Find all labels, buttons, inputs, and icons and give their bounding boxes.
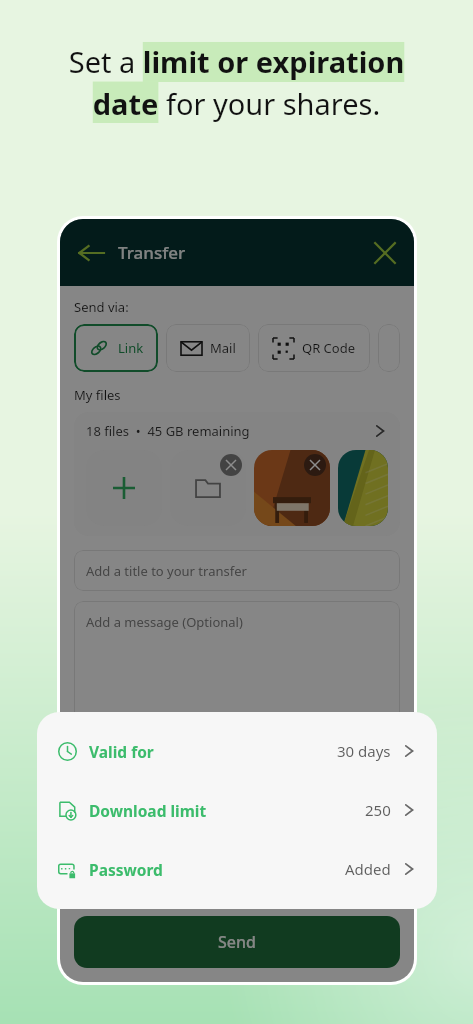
button[interactable]: Valid for [57, 736, 417, 766]
other: Open files [372, 423, 388, 439]
button[interactable] [170, 450, 246, 526]
staticText: Send [218, 931, 256, 953]
staticText: Add a message (Optional) [86, 613, 243, 631]
staticText: 30 days [337, 741, 391, 761]
staticText: QR Code [302, 339, 356, 357]
staticText: Send via: [74, 298, 129, 316]
staticText: Password [89, 859, 163, 880]
staticText: Set a limit or expiration date for your … [24, 42, 449, 123]
button[interactable]: Link [74, 324, 158, 372]
staticText: Transfer [118, 241, 186, 264]
staticText: Added [345, 859, 391, 879]
button[interactable]: Close [372, 240, 398, 266]
button[interactable]: Add a message (Optional) [74, 601, 400, 721]
staticText: Link [118, 339, 144, 357]
button[interactable]: 18 files • 45 GB remaining [74, 412, 400, 536]
button[interactable]: Remove file [304, 454, 326, 476]
staticText: My files [74, 386, 121, 404]
staticText: Valid for [89, 741, 154, 762]
button[interactable]: Remove file [220, 454, 242, 476]
button[interactable]: Mail [166, 324, 250, 372]
button[interactable] [378, 324, 400, 372]
button[interactable]: Download limit [57, 795, 417, 825]
button[interactable]: Back [76, 239, 104, 267]
staticText: Mail [210, 339, 236, 357]
staticText: Download limit [89, 800, 207, 821]
button[interactable]: Add a title to your transfer [74, 550, 400, 591]
staticText: 250 [365, 800, 391, 820]
staticText: 18 files • 45 GB remaining [86, 422, 250, 440]
staticText: Add a title to your transfer [86, 562, 247, 580]
button[interactable]: QR Code [258, 324, 370, 372]
button[interactable]: Add file [86, 450, 162, 526]
button[interactable]: Send [74, 916, 400, 968]
button[interactable]: Password [57, 854, 417, 884]
